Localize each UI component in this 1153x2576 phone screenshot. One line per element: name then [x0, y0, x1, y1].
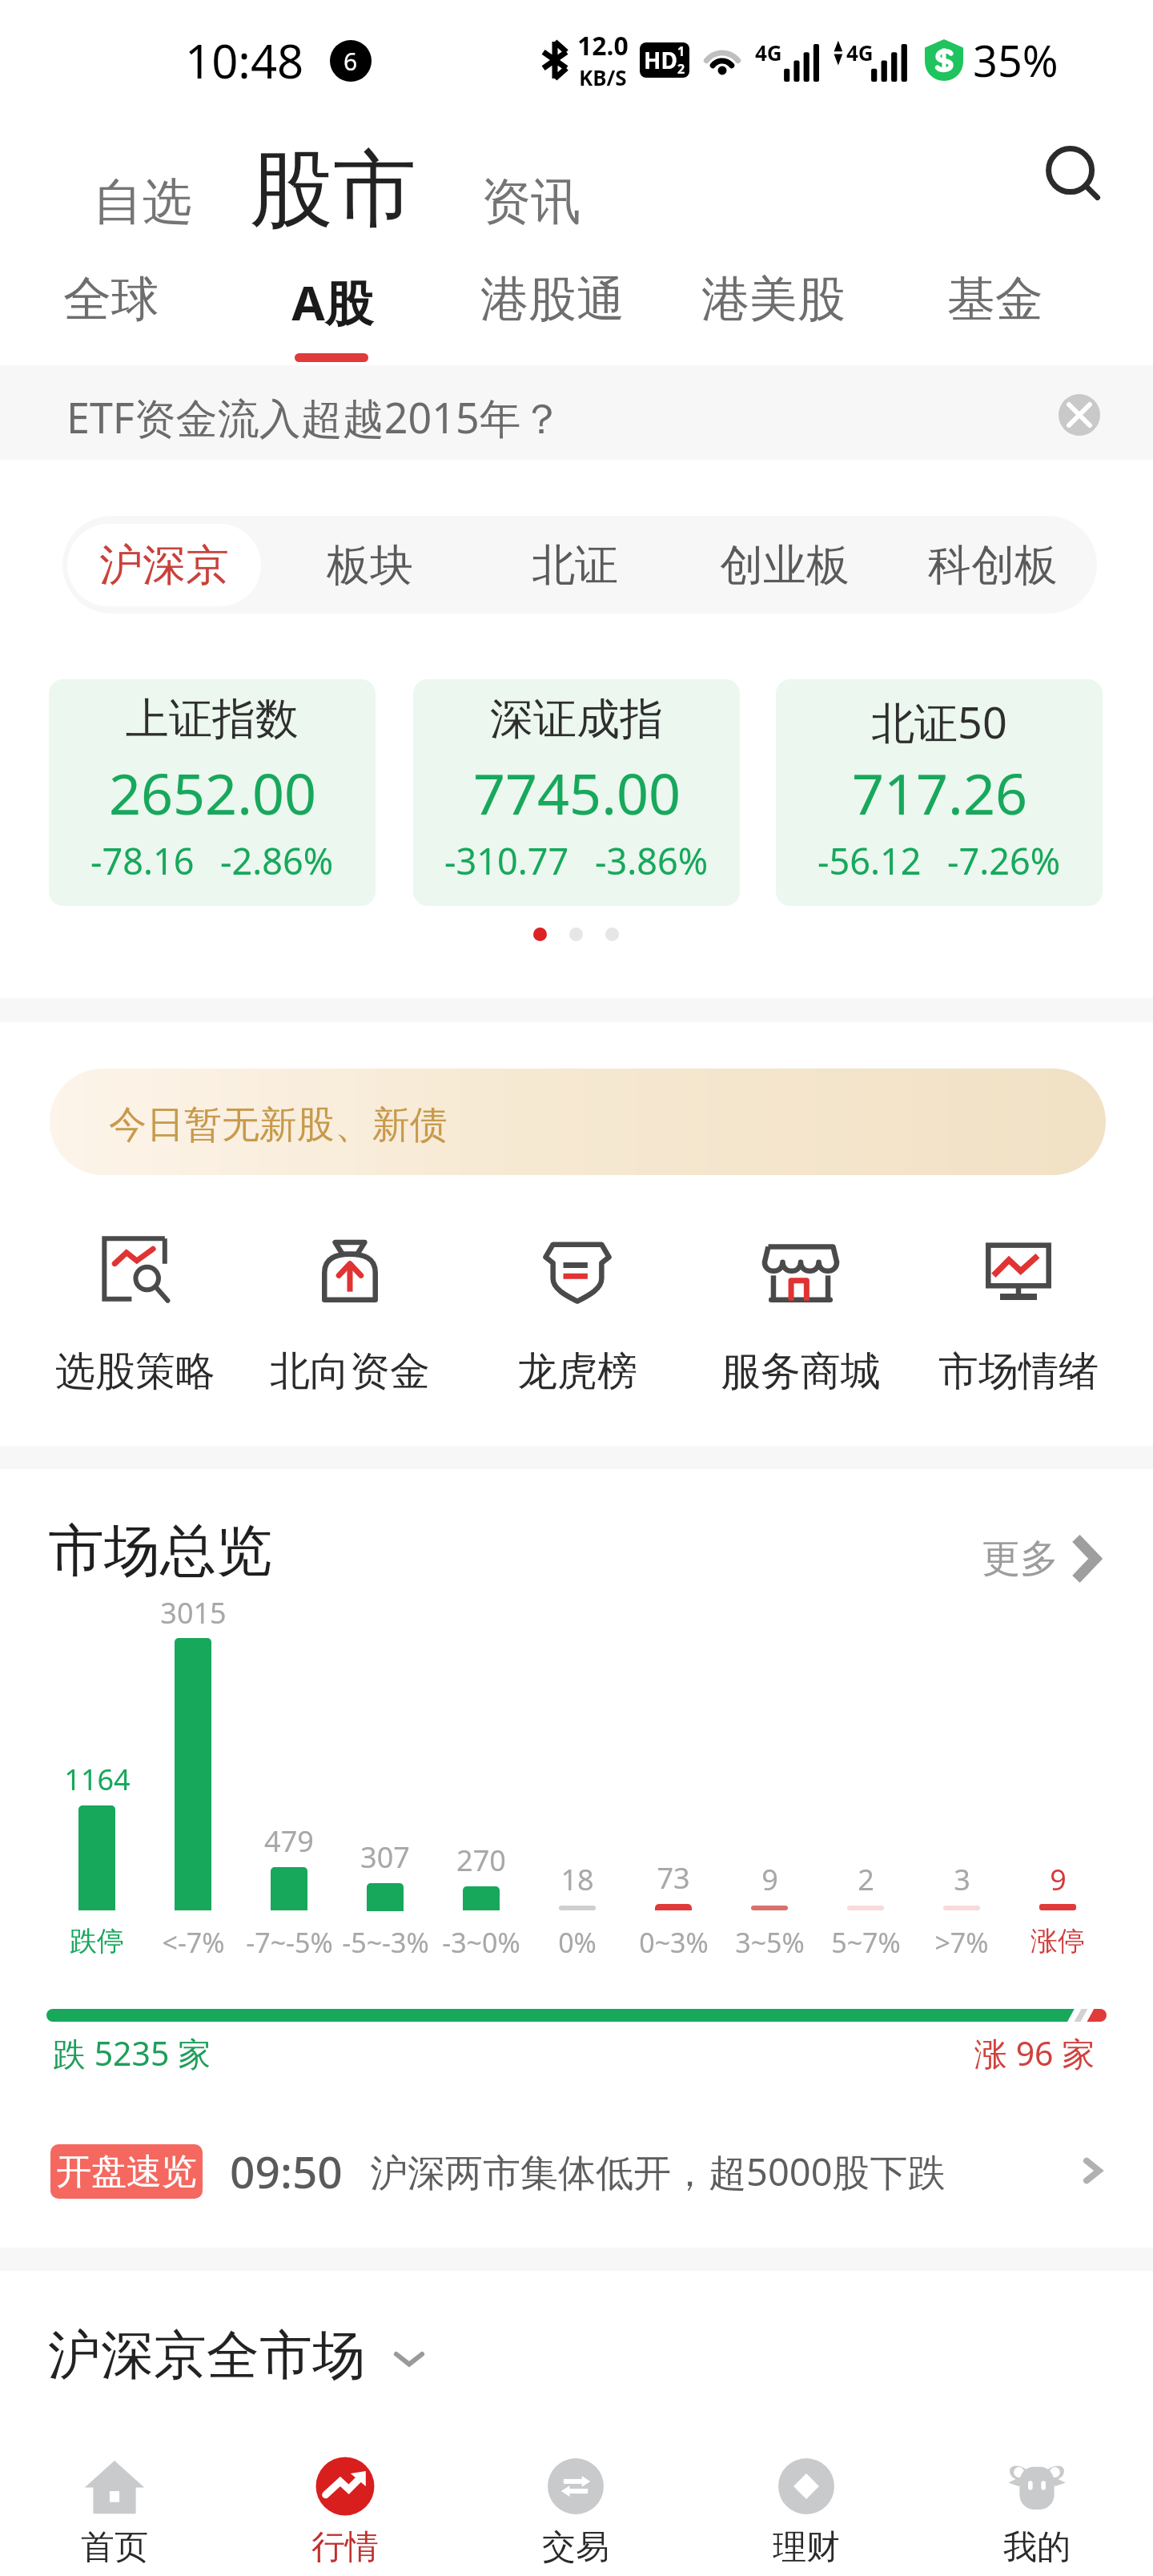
staticText: 1	[677, 42, 685, 60]
button[interactable]: Close banner	[1059, 394, 1100, 436]
staticText: 开盘速览	[56, 2150, 197, 2194]
staticText: 5~7%	[831, 1924, 901, 1961]
staticText: 我的	[1003, 2526, 1071, 2569]
staticText: 2652.00	[109, 755, 316, 831]
staticText: 0~3%	[639, 1924, 709, 1961]
button[interactable]: 市场情绪	[926, 1233, 1111, 1397]
staticText: 4G	[755, 38, 782, 66]
button[interactable]: 板块	[314, 524, 426, 606]
staticText: <-7%	[162, 1924, 225, 1961]
staticText: 涨 96 家	[974, 2031, 1095, 2075]
button[interactable]: 自选	[90, 169, 195, 235]
staticText: 2	[858, 1860, 874, 1899]
staticText: 9	[1050, 1860, 1067, 1899]
staticText: 上证指数	[126, 692, 299, 747]
button[interactable]: 深证成指	[413, 679, 740, 906]
staticText: 沪深京	[99, 538, 229, 593]
staticText: 全球	[63, 269, 159, 330]
staticText: 交易	[542, 2526, 609, 2569]
staticText: 创业板	[720, 538, 850, 593]
staticText: 3~5%	[735, 1924, 805, 1961]
staticText: 18	[560, 1860, 594, 1899]
button[interactable]: 服务商城	[709, 1233, 893, 1397]
staticText: 73	[657, 1858, 690, 1898]
button[interactable]: 今日暂无新股、新债	[50, 1069, 1106, 1175]
button[interactable]: 选股策略	[43, 1233, 227, 1397]
staticText: 选股策略	[55, 1346, 215, 1397]
button[interactable]: 基金	[945, 269, 1045, 353]
staticText: 跌 5235 家	[53, 2031, 211, 2075]
button[interactable]: 沪深京	[67, 524, 261, 606]
staticText: 307	[360, 1837, 410, 1877]
staticText: -310.77	[444, 836, 569, 885]
staticText: KB/S	[579, 63, 627, 91]
button[interactable]: 交易	[472, 2440, 680, 2576]
staticText: 理财	[773, 2526, 840, 2569]
staticText: 科创板	[928, 538, 1058, 593]
staticText: -3~0%	[442, 1924, 520, 1961]
staticText: 市场总览	[48, 1516, 272, 1587]
staticText: 2	[677, 60, 685, 78]
staticText: 1164	[64, 1760, 131, 1799]
staticText: 沪深两市集体低开，超5000股下跌	[370, 2146, 946, 2197]
staticText: 基金	[947, 269, 1043, 330]
staticText: >7%	[934, 1924, 989, 1961]
staticText: 行情	[311, 2526, 379, 2569]
button[interactable]: Expand market	[391, 2347, 428, 2371]
staticText: 北证	[532, 538, 618, 593]
button[interactable]: 北向资金	[258, 1233, 442, 1397]
button[interactable]: 首页	[10, 2440, 219, 2576]
staticText: -3.86%	[595, 836, 709, 885]
button[interactable]: 我的	[933, 2440, 1141, 2576]
staticText: 服务商城	[721, 1346, 881, 1397]
button[interactable]: 全球	[61, 269, 161, 353]
staticText: 首页	[81, 2526, 148, 2569]
button[interactable]: 股市	[247, 138, 420, 243]
staticText: 自选	[93, 171, 192, 233]
staticText: 6	[343, 45, 358, 78]
button[interactable]: ETF资金流入超越2015年？	[0, 365, 1153, 460]
button[interactable]: 上证指数	[49, 679, 376, 906]
staticText: 3015	[160, 1593, 227, 1632]
staticText: 9	[761, 1860, 778, 1899]
staticText: 北向资金	[270, 1346, 430, 1397]
staticText: 沪深京全市场	[48, 2322, 365, 2389]
staticText: 0%	[558, 1924, 597, 1961]
button[interactable]: Search	[1043, 143, 1099, 199]
staticText: 跌停	[70, 1924, 124, 1958]
staticText: 3	[954, 1860, 970, 1899]
button[interactable]: 龙虎榜	[485, 1233, 669, 1397]
staticText: 270	[456, 1841, 506, 1880]
button[interactable]: 开盘速览	[0, 2115, 1153, 2227]
staticText: 港股通	[480, 269, 625, 330]
staticText: 市场情绪	[938, 1346, 1099, 1397]
staticText: A股	[291, 269, 373, 335]
staticText: HD	[644, 45, 677, 75]
button[interactable]: 创业板	[709, 524, 861, 606]
staticText: -7~-5%	[246, 1924, 333, 1961]
button[interactable]: 更多	[978, 1532, 1103, 1586]
button[interactable]: 理财	[702, 2440, 910, 2576]
staticText: -78.16	[90, 836, 195, 885]
staticText: 4G	[846, 38, 874, 66]
staticText: 35%	[973, 30, 1059, 90]
staticText: 北证50	[871, 692, 1007, 751]
staticText: 资讯	[481, 171, 581, 233]
button[interactable]: 港股通	[480, 269, 625, 353]
button[interactable]: 科创板	[917, 524, 1069, 606]
staticText: 10:48	[185, 29, 304, 92]
button[interactable]: 北证50	[776, 679, 1103, 906]
button[interactable]: 港美股	[701, 269, 846, 353]
button[interactable]: 行情	[241, 2440, 449, 2576]
staticText: -2.86%	[220, 836, 334, 885]
staticText: 7745.00	[473, 755, 681, 831]
staticText: 深证成指	[490, 692, 663, 747]
staticText: 09:50	[230, 2141, 343, 2201]
staticText: 龙虎榜	[517, 1346, 637, 1397]
staticText: 板块	[327, 538, 413, 593]
button[interactable]: A股	[282, 269, 382, 353]
button[interactable]: 资讯	[478, 169, 584, 235]
staticText: -5~-3%	[342, 1924, 429, 1961]
staticText: 今日暂无新股、新债	[109, 1101, 448, 1149]
button[interactable]: 北证	[519, 524, 631, 606]
